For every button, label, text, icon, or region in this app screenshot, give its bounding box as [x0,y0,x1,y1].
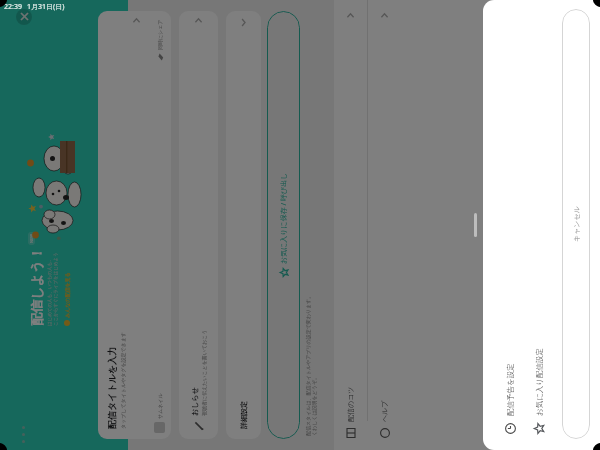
button[interactable]: 配信タイトルを入力 [98,11,171,439]
staticText: お気に入りに保存 / 呼び出し [279,172,289,264]
staticText: タップしてタイトルやタグを設定できます [120,332,126,429]
button[interactable]: お気に入り配信設定 [525,0,554,450]
button[interactable]: みんなの配信を見る [64,272,70,326]
staticText: おしらせ [190,387,199,416]
staticText: 配信しよう！ [28,247,44,326]
staticText: みんなの配信を見る [64,272,70,318]
button[interactable]: Close [16,9,32,25]
staticText: 詳細設定 [239,401,248,429]
staticText: NEW [29,234,34,243]
button[interactable]: おしらせ [179,11,218,439]
staticText: 同時にシェア [157,19,163,50]
button[interactable]: お気に入りに保存 / 呼び出し [267,11,300,439]
staticText: 1月31日(日) [27,2,65,12]
staticText: キャンセル [572,206,581,242]
staticText: 22:39 [4,2,22,12]
staticText: 配信予告を設定 [506,363,515,416]
staticText: はじめての人も、いつもの人も。 ここからすぐにライブをはじめよう [47,252,59,326]
staticText: サムネイル [157,393,163,419]
button[interactable]: 同時にシェア [156,19,164,61]
button[interactable]: ヘルプ [368,0,401,450]
button[interactable]: 詳細設定 [226,11,261,439]
staticText: 配信タイトルを入力 [106,346,117,429]
button[interactable]: 配信予告を設定 [496,0,525,450]
button[interactable]: More options [17,425,29,445]
staticText: 配信のコツ [346,386,355,422]
staticText: 視聴者に伝えたいことを書いておこう [201,329,207,416]
button[interactable]: キャンセル [562,9,590,439]
staticText: お気に入り配信設定 [535,347,544,416]
button[interactable]: サムネイル [154,393,165,433]
staticText: 配信スタイルは、配信タイトルやアプリの設定で変わります。 くわしくは説明をどうぞ… [305,293,317,436]
staticText: ヘルプ [380,400,389,422]
button[interactable]: 配信のコツ [334,0,367,450]
